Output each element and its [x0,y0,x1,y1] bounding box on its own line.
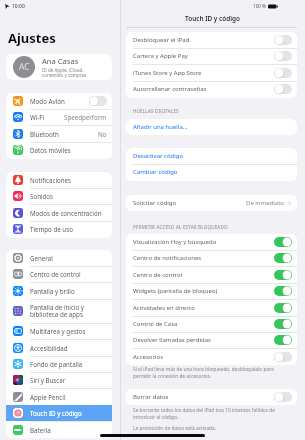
staticText: 10:00 [12,3,25,10]
staticText: Apple Pencil [30,393,66,401]
staticText: Cartera y Apple Pay [133,52,188,60]
staticText: Ana Casas [42,56,79,66]
button[interactable]: Centro de notificaciones [126,250,297,266]
button[interactable]: Batería [6,422,112,438]
button[interactable]: Desactivado [274,51,292,61]
button[interactable]: Activado [274,335,292,345]
staticText: AC [19,61,30,73]
staticText: Datos móviles [30,146,71,154]
button[interactable]: Borrar datos [126,389,297,405]
button[interactable]: Sonidos [6,188,112,204]
button[interactable]: Centro de control [126,267,297,283]
staticText: Cambiar código [133,168,178,176]
button[interactable]: Tiempo de uso [6,221,112,237]
staticText: Speedperform [64,113,107,121]
button[interactable]: Desbloquear el iPad [126,32,297,48]
staticText: Modos de concentración [30,209,102,217]
button[interactable]: Touch ID y código [6,405,112,421]
button[interactable]: AC [6,54,112,80]
button[interactable]: Siri y Buscar [6,372,112,388]
button[interactable]: Modos de concentración [6,205,112,221]
staticText: Devolver llamadas perdidas [133,336,211,344]
button[interactable]: Añadir una huella... [126,119,297,135]
staticText: Desactivar código [133,152,184,160]
staticText: Pantalla de inicio y biblioteca de apps [30,303,85,319]
staticText: Visualización Hoy y búsqueda [133,238,217,246]
staticText: Tiempo de uso [30,225,73,233]
staticText: De inmediato [246,199,284,207]
button[interactable]: Widgets (pantalla de bloqueo) [126,283,297,299]
staticText: Accesibilidad [30,344,68,352]
button[interactable]: Desactivado [274,84,292,94]
button[interactable]: Solicitar código [126,195,297,211]
staticText: Multitarea y gestos [30,327,86,335]
button[interactable]: Activado [274,319,292,329]
button[interactable]: Apple Pencil [6,389,112,405]
staticText: Ajustes [8,29,56,47]
staticText: Desbloquear el iPad [133,36,190,44]
button[interactable]: Activado [274,253,292,263]
button[interactable]: Notificaciones [6,172,112,188]
staticText: HUELLAS DIGITALES [133,108,179,114]
staticText: 100 % [253,3,266,9]
staticText: Wi-Fi [30,113,45,121]
staticText: Borrar datos [133,393,169,401]
staticText: Actividades en directo [133,304,195,312]
button[interactable]: General [6,250,112,266]
staticText: Centro de notificaciones [133,254,202,262]
button[interactable]: Wi-Fi [6,109,112,125]
staticText: La protección de datos está activada. [133,425,216,432]
button[interactable]: Devolver llamadas perdidas [126,332,297,348]
staticText: Centro de control [30,270,81,278]
staticText: Widgets (pantalla de bloqueo) [133,287,218,295]
button[interactable]: Activado [274,303,292,313]
button[interactable]: Autorrellenar contraseñas [126,81,297,97]
button[interactable]: Multitarea y gestos [6,323,112,339]
button[interactable]: Cambiar código [126,164,297,180]
staticText: Fondo de pantalla [30,360,83,368]
button[interactable]: Accesibilidad [6,340,112,356]
button[interactable]: Visualización Hoy y búsqueda [126,234,297,250]
staticText: Notificaciones [30,176,72,184]
button[interactable]: Activado [274,270,292,280]
button[interactable]: Control de Casa [126,316,297,332]
button[interactable]: Cartera y Apple Pay [126,48,297,64]
staticText: Si el iPad lleva más de una hora bloquea… [133,366,274,380]
staticText: Añadir una huella... [133,123,188,131]
staticText: Touch ID y código [30,409,82,417]
button[interactable]: Desactivado [274,68,292,78]
button[interactable]: Modo Avión [6,93,112,109]
staticText: Batería [30,426,51,434]
staticText: Bluetooth [30,130,59,138]
staticText: Sonidos [30,192,54,200]
button[interactable]: Desactivado [89,96,107,106]
staticText: ID de Apple, iCloud, contenido y compras [42,67,87,78]
staticText: Centro de control [133,271,183,279]
button[interactable]: Pantalla de inicio y biblioteca de apps [6,299,112,323]
button[interactable]: Desactivar código [126,148,297,164]
button[interactable]: Activado [274,237,292,247]
button[interactable]: iTunes Store y App Store [126,65,297,81]
button[interactable]: Fondo de pantalla [6,356,112,372]
button[interactable]: Activado [274,286,292,296]
staticText: General [30,254,53,262]
staticText: iTunes Store y App Store [133,69,202,77]
staticText: Pantalla y brillo [30,287,75,295]
button[interactable]: Datos móviles [6,142,112,158]
button[interactable]: Actividades en directo [126,300,297,316]
staticText: No [98,130,107,138]
staticText: Accesorios [133,353,164,361]
button[interactable]: Accesorios [126,349,297,365]
button[interactable]: Desactivado [274,35,292,45]
button[interactable]: Centro de control [6,266,112,282]
staticText: Solicitar código [133,199,177,207]
staticText: PERMITIR ACCESO AL ESTAR BLOQUEADO [133,224,228,230]
button[interactable]: Pantalla y brillo [6,283,112,299]
staticText: Autorrellenar contraseñas [133,85,207,93]
button[interactable]: Bluetooth [6,126,112,142]
button[interactable]: Desactivado [274,352,292,362]
staticText: Se borrarán todos los datos del iPad tra… [133,407,275,421]
button[interactable]: Desactivado [274,392,292,402]
staticText: Modo Avión [30,97,65,105]
staticText: Siri y Buscar [30,376,66,384]
